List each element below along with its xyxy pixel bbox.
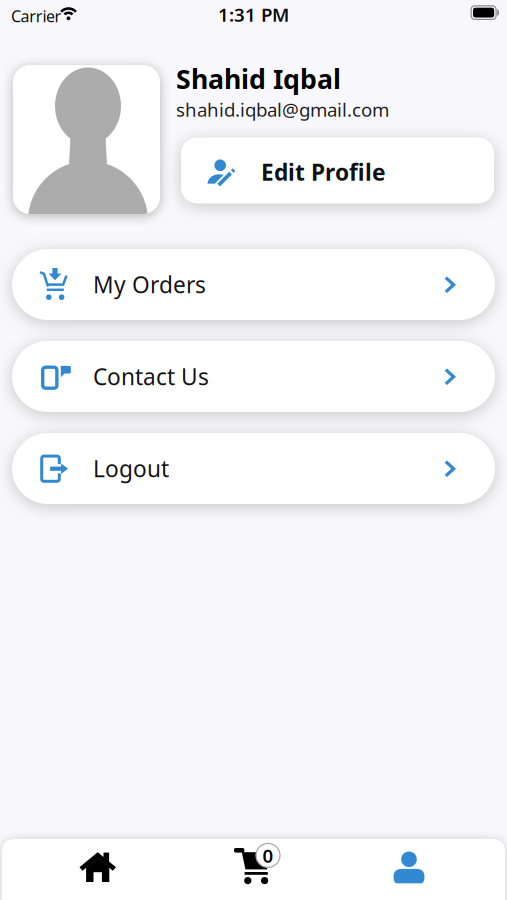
staticText: 0 — [262, 843, 273, 868]
staticText: 1:31 PM — [218, 2, 289, 27]
button[interactable]: Contact Us — [12, 341, 495, 412]
staticText: My Orders — [93, 269, 206, 299]
button[interactable]: Cart — [224, 843, 286, 893]
staticText: Shahid Iqbal — [176, 61, 341, 96]
button[interactable]: Profile — [378, 843, 440, 891]
staticText: Edit Profile — [261, 157, 386, 187]
staticText: Carrier — [11, 5, 62, 27]
staticText: shahid.iqbal@gmail.com — [176, 97, 389, 122]
staticText: Logout — [93, 453, 169, 483]
button[interactable]: Home — [67, 843, 129, 891]
button[interactable]: My Orders — [12, 249, 495, 320]
button[interactable]: Logout — [12, 433, 495, 504]
button[interactable]: Edit Profile — [181, 137, 494, 203]
staticText: Contact Us — [93, 361, 209, 391]
